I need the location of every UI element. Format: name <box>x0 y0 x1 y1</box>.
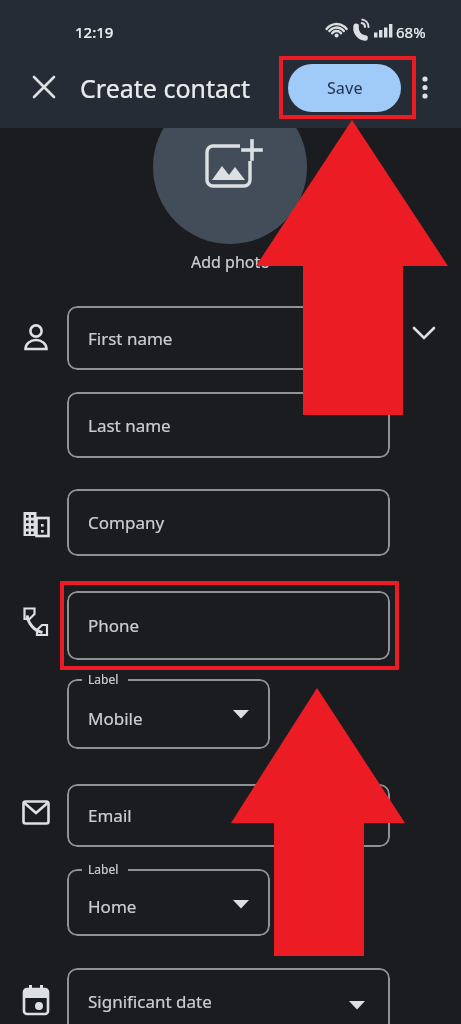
button[interactable] <box>408 68 442 106</box>
staticText: Label <box>88 861 119 877</box>
button[interactable]: Company <box>67 489 390 556</box>
staticText: Phone <box>88 614 140 637</box>
button[interactable]: Save <box>288 64 401 112</box>
staticText: Mobile <box>88 707 143 730</box>
staticText: Significant date <box>88 990 212 1013</box>
button[interactable] <box>153 90 307 244</box>
button[interactable]: Significant date <box>67 968 390 1024</box>
button[interactable]: First name <box>67 306 390 370</box>
staticText: Company <box>88 511 165 534</box>
staticText: Save <box>327 77 363 99</box>
staticText: First name <box>88 327 173 350</box>
button[interactable]: Mobile <box>67 679 270 749</box>
button[interactable]: Last name <box>67 392 390 458</box>
button[interactable]: Phone <box>67 591 390 660</box>
staticText: Home <box>88 895 137 918</box>
staticText: Last name <box>88 414 171 437</box>
staticText: Label <box>88 671 119 687</box>
staticText: 68% <box>396 22 426 42</box>
staticText: 12:19 <box>75 22 114 42</box>
button[interactable]: Home <box>67 869 270 936</box>
staticText: Add photo <box>191 251 270 273</box>
button[interactable] <box>408 317 442 351</box>
button[interactable] <box>26 68 64 106</box>
staticText: Email <box>88 804 132 827</box>
button[interactable]: Email <box>67 784 390 847</box>
staticText: Create contact <box>80 71 251 105</box>
